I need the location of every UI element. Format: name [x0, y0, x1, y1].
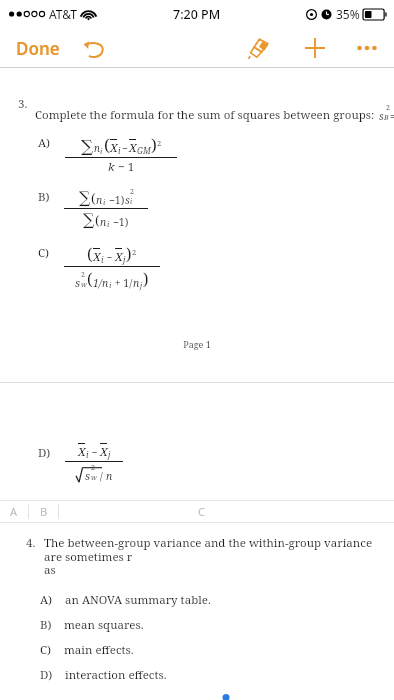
button[interactable]: B [29, 501, 58, 522]
staticText: ( [104, 133, 110, 156]
button[interactable]: Done [14, 35, 62, 62]
staticText: i [86, 449, 89, 460]
staticText: w [81, 280, 87, 290]
staticText: 7:20 PM [173, 6, 221, 23]
staticText: −1) [106, 193, 125, 207]
staticText: i [109, 280, 112, 290]
staticText: 2 [386, 103, 390, 113]
staticText: i [107, 219, 110, 229]
staticText: − [104, 250, 115, 264]
staticText: X [115, 249, 123, 265]
staticText: −1) [110, 215, 129, 229]
staticText: B [384, 113, 389, 123]
staticText: n [133, 276, 140, 290]
staticText: ( [87, 243, 93, 265]
staticText: ) [143, 268, 149, 290]
staticText: A) [40, 592, 53, 608]
staticText: C [198, 504, 205, 519]
staticText: 35% [336, 6, 360, 22]
staticText: 1/ [93, 276, 102, 290]
staticText: X [93, 249, 101, 265]
staticText: i [130, 197, 133, 207]
staticText: D) [38, 445, 51, 461]
staticText: i [100, 146, 103, 156]
button[interactable]: Add [298, 31, 332, 65]
button[interactable]: D) [0, 667, 394, 683]
staticText: w [91, 473, 97, 483]
staticText: ( [91, 189, 96, 207]
staticText: s [75, 275, 81, 290]
staticText: n [94, 141, 100, 155]
staticText: − 1 [115, 159, 135, 175]
staticText: ) [126, 243, 132, 265]
staticText: 2 [132, 247, 137, 257]
staticText: B) [40, 617, 52, 633]
button[interactable]: A [0, 501, 28, 522]
staticText: ( [87, 268, 93, 290]
staticText: C) [40, 642, 52, 658]
staticText: i [101, 254, 104, 265]
staticText: 2 [91, 463, 95, 473]
button[interactable]: Undo [78, 33, 108, 63]
button[interactable]: A) [0, 592, 394, 608]
staticText: n [106, 469, 113, 483]
staticText: k [108, 159, 115, 175]
staticText: i [103, 197, 106, 207]
staticText: Done [16, 37, 60, 60]
staticText: − [122, 141, 128, 155]
staticText: B [40, 504, 48, 519]
staticText: ) [151, 133, 157, 156]
staticText: X [78, 444, 86, 460]
staticText: The between-group variance and the withi… [44, 535, 374, 564]
staticText: j [140, 280, 143, 290]
staticText: X [129, 140, 137, 156]
staticText: Page 1 [183, 338, 211, 350]
staticText: ∑ [81, 136, 94, 156]
staticText: n [102, 276, 109, 290]
staticText: 2 [130, 187, 134, 197]
staticText: ∑ [79, 188, 91, 207]
staticText: main effects. [64, 642, 134, 658]
staticText: s [85, 468, 91, 483]
staticText: i [118, 145, 121, 156]
staticText: 4. [26, 535, 36, 551]
staticText: ∑ [83, 210, 95, 229]
button[interactable]: Highlighter [242, 31, 276, 65]
staticText: ( [95, 211, 100, 229]
staticText: / [97, 469, 106, 483]
staticText: Complete the formula for the sum of squa… [35, 107, 375, 123]
staticText: an ANOVA summary table. [65, 592, 211, 608]
staticText: D) [40, 667, 53, 683]
staticText: s [125, 193, 130, 207]
staticText: C) [38, 245, 50, 261]
staticText: A [10, 504, 18, 519]
staticText: 3. [18, 96, 28, 112]
staticText: s [379, 109, 384, 123]
staticText: X [110, 140, 118, 156]
button[interactable]: More options [350, 31, 384, 65]
staticText: X [100, 444, 108, 460]
staticText: j [123, 254, 126, 265]
staticText: as [44, 562, 56, 578]
staticText: − [89, 445, 100, 459]
staticText: interaction effects. [65, 667, 167, 683]
staticText: A) [38, 135, 51, 151]
staticText: GM [137, 145, 151, 156]
staticText: 2 [81, 270, 85, 280]
staticText: j [108, 449, 111, 460]
staticText: + 1/ [112, 276, 133, 290]
button[interactable]: B) [0, 617, 394, 633]
staticText: n [100, 215, 107, 229]
staticText: B) [38, 189, 50, 205]
staticText: 2 [157, 138, 162, 148]
button[interactable]: C) [0, 642, 394, 658]
staticText: n [96, 193, 103, 207]
staticText: AT&T [49, 6, 77, 22]
staticText: mean squares. [64, 617, 144, 633]
